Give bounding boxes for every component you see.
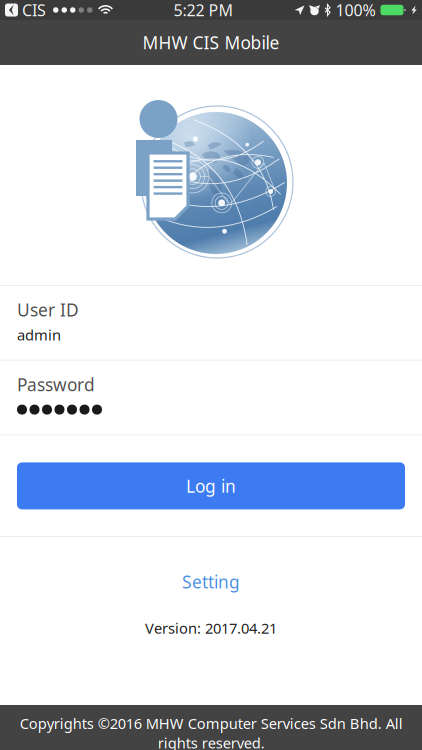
staticText: CIS [22,0,46,21]
staticText: Password [17,373,95,396]
staticText: Log in [186,474,236,497]
staticText: Setting [182,570,240,593]
staticText: MHW CIS Mobile [142,31,279,54]
staticText: 5:22 PM [173,0,233,21]
button[interactable]: Back to CIS [5,0,46,21]
staticText: admin [17,325,61,345]
staticText: 100% [335,0,375,21]
staticText: User ID [17,298,79,321]
button[interactable]: Setting [168,565,254,598]
staticText: Version: 2017.04.21 [145,618,277,638]
staticText: Copyrights ©2016 MHW Computer Services S… [19,713,402,750]
button[interactable]: Log in [17,462,405,509]
